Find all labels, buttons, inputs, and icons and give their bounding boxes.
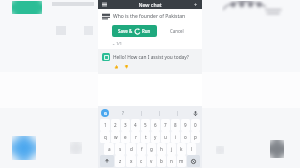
staticText: Save & — [118, 28, 133, 34]
staticText: | — [140, 110, 143, 116]
staticText: Run — [142, 28, 151, 34]
button[interactable]: 4 — [131, 119, 140, 131]
staticText: New chat — [108, 1, 192, 8]
button[interactable]: s — [115, 143, 125, 155]
staticText: 0 — [194, 122, 197, 128]
button[interactable]: l — [187, 143, 196, 155]
staticText: c — [140, 158, 143, 164]
button[interactable]: m — [177, 155, 186, 167]
staticText: x — [130, 158, 133, 164]
staticText: Cancel — [170, 28, 184, 34]
staticText: i — [175, 134, 177, 140]
button[interactable]: Thumbs up — [113, 64, 119, 70]
button[interactable]: 7 — [161, 119, 170, 131]
button[interactable]: r — [131, 131, 140, 143]
staticText: 1 — [104, 122, 107, 128]
staticText: g — [150, 146, 153, 152]
staticText: n — [170, 158, 173, 164]
button[interactable]: z — [115, 155, 125, 167]
staticText: m — [179, 158, 184, 164]
button[interactable]: a — [104, 143, 114, 155]
staticText: f — [141, 146, 143, 152]
staticText: h — [160, 146, 163, 152]
button[interactable]: c — [137, 155, 146, 167]
button[interactable]: Backspace — [187, 155, 200, 167]
button[interactable]: 8 — [171, 119, 180, 131]
button[interactable]: Clipboard — [155, 109, 163, 117]
button[interactable]: h — [157, 143, 166, 155]
staticText: o — [184, 134, 187, 140]
staticText: d — [130, 146, 133, 152]
button[interactable]: 0 — [191, 119, 200, 131]
staticText: t — [145, 134, 147, 140]
staticText: u — [164, 134, 167, 140]
staticText: | — [176, 110, 179, 116]
staticText: p — [194, 134, 197, 140]
button[interactable]: w — [111, 131, 120, 143]
button[interactable]: o — [181, 131, 190, 143]
staticText: z — [119, 158, 122, 164]
staticText: 👍 — [114, 65, 119, 69]
staticText: y — [154, 134, 157, 140]
button[interactable]: t — [141, 131, 150, 143]
staticText: | — [158, 110, 161, 116]
button[interactable]: u — [161, 131, 170, 143]
button[interactable]: Shift — [100, 155, 114, 167]
button[interactable]: More options — [192, 1, 199, 8]
staticText: ? — [122, 110, 124, 116]
staticText: q — [104, 134, 107, 140]
staticText: 8 — [174, 122, 177, 128]
staticText: b — [160, 158, 163, 164]
staticText: l — [191, 146, 193, 152]
button[interactable]: Thumbs down — [123, 64, 129, 70]
button[interactable]: 5 — [141, 119, 150, 131]
staticText: 2 — [114, 122, 117, 128]
button[interactable]: Google Assistant — [101, 109, 109, 117]
staticText: s — [119, 146, 122, 152]
button[interactable]: 3 — [121, 119, 130, 131]
staticText: 👎 — [124, 65, 129, 69]
staticText: Hello! How can I assist you today? — [113, 54, 189, 61]
button[interactable]: i — [171, 131, 180, 143]
staticText: ⌄ 1/1 — [112, 41, 122, 46]
staticText: w — [114, 134, 118, 140]
staticText: e — [124, 134, 127, 140]
button[interactable]: y — [151, 131, 160, 143]
button[interactable]: f — [137, 143, 146, 155]
button[interactable]: 6 — [151, 119, 160, 131]
staticText: k — [180, 146, 183, 152]
staticText: a — [108, 146, 111, 152]
button[interactable]: v — [147, 155, 156, 167]
button[interactable]: n — [167, 155, 176, 167]
staticText: 7 — [164, 122, 167, 128]
button[interactable]: p — [191, 131, 200, 143]
button[interactable]: Settings — [173, 109, 181, 117]
staticText: v — [150, 158, 153, 164]
staticText: 5 — [144, 122, 147, 128]
button[interactable]: Menu — [101, 1, 108, 8]
button[interactable]: x — [126, 155, 136, 167]
button[interactable]: GIF — [119, 109, 127, 117]
button[interactable]: Sticker — [137, 109, 145, 117]
button[interactable]: 1 — [100, 119, 110, 131]
button[interactable]: q — [100, 131, 110, 143]
button[interactable]: j — [167, 143, 176, 155]
staticText: 4 — [134, 122, 137, 128]
button[interactable]: Voice input — [191, 109, 199, 117]
staticText: 6 — [154, 122, 157, 128]
button[interactable]: b — [157, 155, 166, 167]
button[interactable]: 9 — [181, 119, 190, 131]
staticText: r — [135, 134, 137, 140]
button[interactable]: 2 — [111, 119, 120, 131]
button[interactable]: g — [147, 143, 156, 155]
button[interactable]: Save & — [112, 25, 157, 37]
button[interactable]: k — [177, 143, 186, 155]
staticText: G — [104, 111, 107, 116]
staticText: 9 — [184, 122, 187, 128]
button[interactable]: d — [126, 143, 136, 155]
button[interactable]: Cancel — [165, 25, 189, 37]
staticText: j — [171, 146, 173, 152]
button[interactable]: e — [121, 131, 130, 143]
staticText: 3 — [124, 122, 127, 128]
staticText: Who is the founder of Pakistan — [113, 13, 186, 20]
